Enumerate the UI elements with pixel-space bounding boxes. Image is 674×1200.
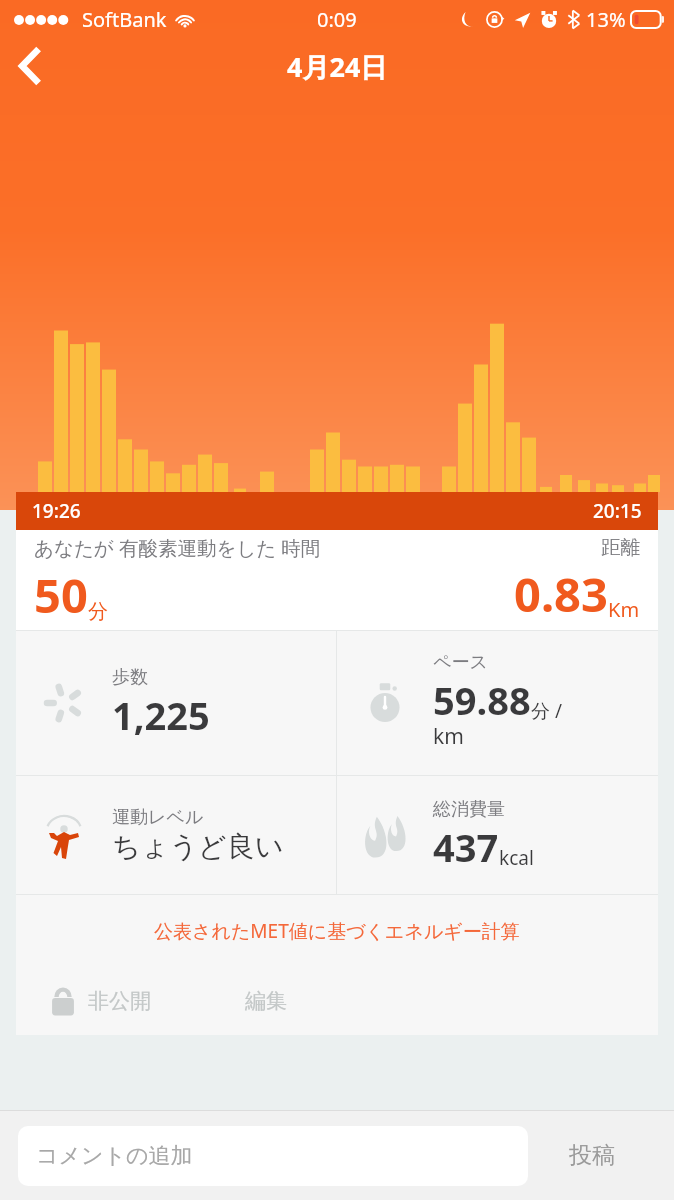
button[interactable]: 運動レベル (16, 776, 336, 894)
button[interactable]: コメントの追加 (18, 1126, 528, 1186)
staticText: 分 (88, 599, 108, 624)
staticText: SoftBank (82, 6, 167, 33)
staticText: 分 / (531, 698, 563, 724)
staticText: Km (608, 596, 640, 623)
staticText: あなたが 有酸素運動をした 時間 (34, 534, 321, 561)
button[interactable]: ペース (337, 631, 658, 775)
button[interactable]: 歩数 (16, 631, 336, 775)
button[interactable]: 非公開 (50, 986, 151, 1016)
button[interactable]: 総消費量 (337, 776, 658, 894)
staticText: 20:15 (593, 498, 642, 524)
button[interactable]: 投稿 (528, 1111, 656, 1200)
staticText: 距離 (601, 535, 640, 560)
staticText: ペース (433, 651, 488, 674)
button[interactable]: Back (0, 38, 64, 94)
staticText: 1,225 (112, 689, 210, 741)
staticText: 437 (433, 821, 499, 873)
staticText: 50 (34, 563, 88, 627)
staticText: コメントの追加 (36, 1142, 193, 1170)
staticText: 歩数 (112, 666, 148, 689)
staticText: km (433, 722, 464, 751)
staticText: 投稿 (569, 1141, 615, 1170)
staticText: 19:26 (32, 498, 81, 524)
staticText: 公表されたMET値に基づくエネルギー計算 (154, 918, 520, 944)
staticText: 0:09 (317, 6, 357, 33)
staticText: 非公開 (88, 988, 151, 1014)
staticText: 59.88 (433, 674, 531, 726)
button[interactable]: 公表されたMET値に基づくエネルギー計算 (16, 895, 658, 967)
staticText: 編集 (245, 988, 287, 1014)
staticText: 13% (586, 6, 626, 33)
staticText: kcal (499, 845, 534, 871)
staticText: 運動レベル (112, 806, 204, 829)
staticText: ちょうど良い (112, 829, 284, 864)
staticText: 4月24日 (287, 48, 388, 85)
staticText: 0.83 (514, 562, 608, 626)
staticText: 総消費量 (433, 798, 505, 821)
button[interactable]: 編集 (245, 988, 287, 1014)
